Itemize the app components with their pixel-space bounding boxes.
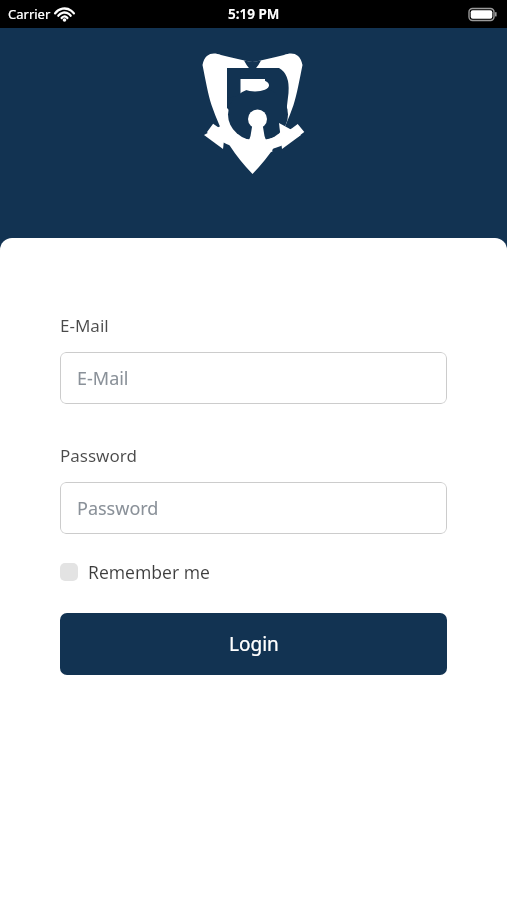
staticText: Password [60,444,137,467]
button[interactable]: Remember me [60,560,210,584]
staticText: Remember me [88,560,210,584]
staticText: E-Mail [77,366,129,391]
staticText: E-Mail [60,314,109,337]
staticText: 5:19 PM [228,5,280,23]
staticText: Login [229,631,279,657]
button[interactable]: Login [60,613,447,675]
staticText: Carrier [8,5,51,23]
button[interactable]: E-Mail [60,352,447,404]
button[interactable]: Password [60,482,447,534]
staticText: Password [77,496,159,521]
